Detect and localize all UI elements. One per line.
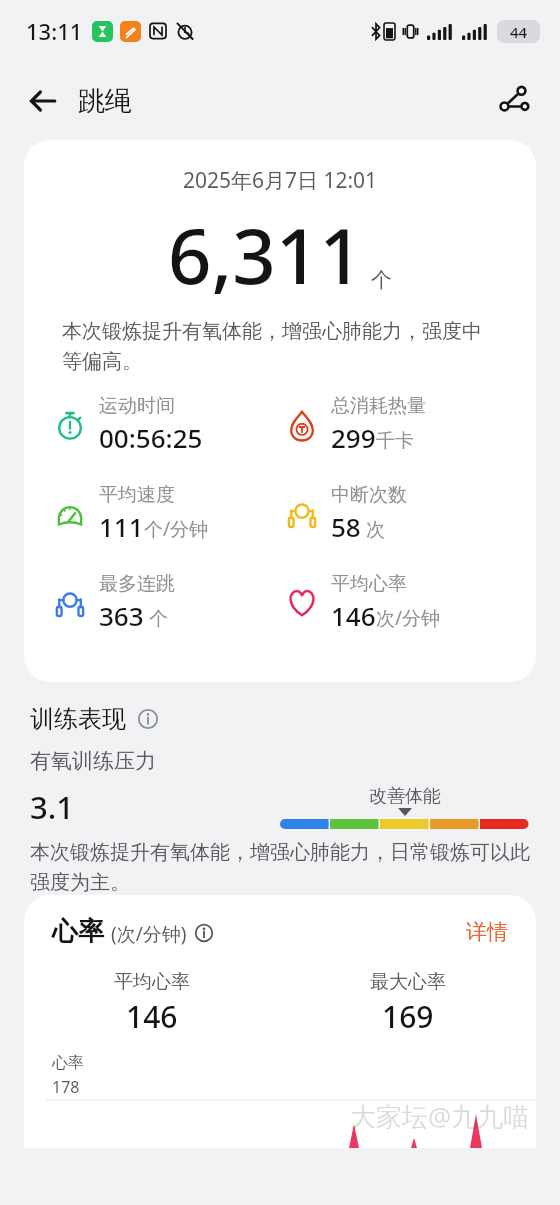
staticText: 个/分钟 (144, 516, 209, 542)
staticText: 中断次数 (331, 483, 407, 507)
staticText: 训练表现 (30, 704, 126, 734)
button[interactable]: 返回 (18, 75, 70, 127)
staticText: 44 (510, 22, 528, 42)
staticText: 次 (361, 516, 385, 542)
staticText: 最多连跳 (99, 572, 175, 596)
staticText: 次/分钟 (376, 605, 441, 631)
staticText: 心率 (52, 1053, 84, 1073)
staticText: 6,311 (168, 203, 363, 307)
staticText: 299 (331, 420, 376, 455)
staticText: 平均心率 (114, 970, 190, 994)
staticText: 有氧训练压力 (30, 748, 156, 774)
staticText: 运动时间 (99, 394, 175, 418)
staticText: 146 (331, 598, 376, 633)
staticText: 平均速度 (99, 483, 175, 507)
staticText: 363 (99, 598, 144, 633)
staticText: 2025年6月7日 12:01 (24, 166, 536, 195)
staticText: 心率 (52, 915, 104, 948)
staticText: 169 (382, 996, 434, 1037)
staticText: 改善体能 (369, 785, 441, 808)
staticText: 最大心率 (370, 970, 446, 994)
staticText: 跳绳 (78, 84, 132, 118)
staticText: 3.1 (30, 786, 74, 828)
button[interactable]: 说明 (135, 706, 161, 732)
button[interactable]: 心率 (24, 895, 536, 1148)
staticText: 178 (52, 1076, 80, 1098)
staticText: 详情 (466, 919, 508, 945)
staticText: 大家坛@九九喵 (350, 1098, 530, 1134)
staticText: 个 (144, 605, 168, 631)
staticText: 千卡 (376, 429, 414, 453)
staticText: 13:11 (26, 16, 83, 46)
button[interactable]: 2025年6月7日 12:01 (24, 140, 536, 682)
staticText: 111 (99, 509, 144, 544)
staticText: 个 (371, 267, 392, 293)
staticText: 平均心率 (331, 572, 407, 596)
button[interactable]: 详情 (466, 919, 508, 945)
staticText: 本次锻炼提升有氧体能，增强心肺能力，强度中等偏高。 (62, 319, 498, 374)
staticText: 总消耗热量 (331, 394, 426, 418)
staticText: 00:56:25 (99, 420, 203, 455)
staticText: 146 (126, 996, 178, 1037)
button[interactable]: 说明 (193, 922, 215, 944)
staticText: (次/分钟) (111, 921, 187, 947)
staticText: 58 (331, 509, 361, 544)
button[interactable]: 分享 (488, 75, 540, 127)
staticText: 本次锻炼提升有氧体能，增强心肺能力，日常锻炼可以此强度为主。 (30, 840, 530, 895)
